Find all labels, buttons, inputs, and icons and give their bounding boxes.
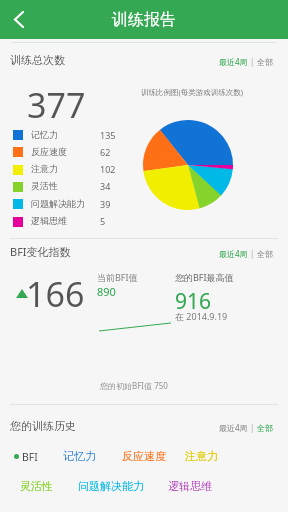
staticText: 反应速度 xyxy=(122,449,166,463)
staticText: 训练比例图(每类游戏训练次数) xyxy=(141,87,243,97)
staticText: 最近4周 xyxy=(219,422,248,433)
staticText: 62 xyxy=(100,146,111,158)
button[interactable]: 最近4周 xyxy=(219,422,248,433)
staticText: | xyxy=(248,422,257,433)
staticText: 全部 xyxy=(257,57,273,67)
staticText: 您的训练历史 xyxy=(10,419,76,433)
staticText: | xyxy=(248,56,257,67)
staticText: 916 xyxy=(175,287,212,316)
staticText: 全部 xyxy=(257,249,273,259)
staticText: 训练报告 xyxy=(112,10,176,30)
button[interactable] xyxy=(14,11,25,28)
staticText: 34 xyxy=(100,180,111,192)
staticText: 您的初始BFI值 750 xyxy=(100,380,168,391)
staticText: 注意力 xyxy=(31,163,58,174)
staticText: 5 xyxy=(100,215,106,227)
staticText: BFI变化指数 xyxy=(10,244,71,259)
staticText: BFI xyxy=(22,450,38,464)
staticText: 问题解决能力 xyxy=(31,198,85,209)
staticText: 问题解决能力 xyxy=(78,479,144,493)
staticText: 最近4周 xyxy=(219,56,248,67)
staticText: 您的BFI最高值 xyxy=(175,271,234,283)
staticText: 39 xyxy=(100,198,111,210)
staticText: 灵活性 xyxy=(31,180,58,191)
staticText: 逻辑思维 xyxy=(168,479,212,493)
staticText: 训练总次数 xyxy=(10,53,65,67)
staticText: 注意力 xyxy=(185,449,218,463)
staticText: | xyxy=(248,248,257,259)
staticText: 377 xyxy=(27,82,86,128)
staticText: 逻辑思维 xyxy=(31,215,67,226)
staticText: 灵活性 xyxy=(20,479,53,493)
staticText: 在 2014.9.19 xyxy=(175,310,228,322)
button[interactable]: 最近4周 xyxy=(219,56,248,67)
staticText: 最近4周 xyxy=(219,248,248,259)
staticText: 102 xyxy=(100,163,116,175)
staticText: 当前BFI值 xyxy=(97,271,138,283)
staticText: 记忆力 xyxy=(31,129,58,140)
staticText: 反应速度 xyxy=(31,146,67,157)
button[interactable]: 最近4周 xyxy=(219,248,248,259)
button[interactable]: 全部 xyxy=(257,57,273,67)
staticText: 135 xyxy=(100,129,116,141)
staticText: 记忆力 xyxy=(63,449,96,463)
button[interactable]: 全部 xyxy=(257,249,273,259)
staticText: 890 xyxy=(97,284,116,299)
button[interactable]: 全部 xyxy=(257,423,273,433)
staticText: 166 xyxy=(26,271,85,317)
staticText: 全部 xyxy=(257,423,273,433)
